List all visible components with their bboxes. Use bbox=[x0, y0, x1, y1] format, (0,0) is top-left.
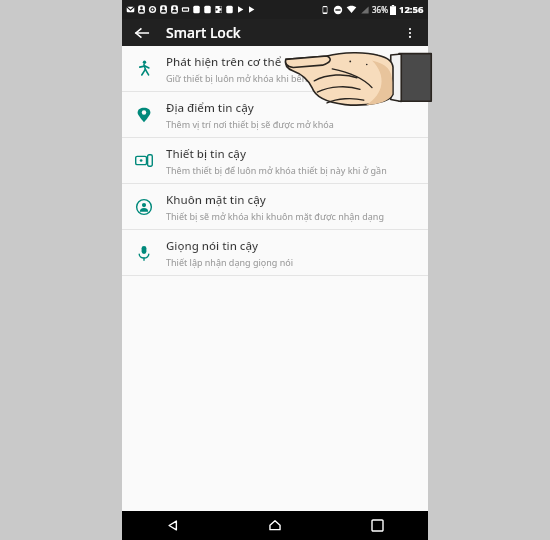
staticText: Thiết bị tin cậy bbox=[166, 146, 247, 162]
button[interactable]: Back bbox=[122, 511, 224, 540]
staticText: Địa điểm tin cậy bbox=[166, 100, 254, 116]
staticText: Smart Lock bbox=[166, 23, 241, 42]
staticText: Giữ thiết bị luôn mở khóa khi bên bạn bbox=[166, 72, 326, 84]
button[interactable]: Home bbox=[224, 511, 326, 540]
button[interactable]: Back bbox=[129, 20, 155, 46]
button[interactable]: Khuôn mặt tin cậy bbox=[122, 184, 428, 229]
staticText: Thiết bị sẽ mở khóa khi khuôn mặt được n… bbox=[166, 210, 384, 222]
staticText: Thêm vị trí nơi thiết bị sẽ được mở khóa bbox=[166, 118, 334, 130]
button[interactable]: Thiết bị tin cậy bbox=[122, 138, 428, 183]
button[interactable]: Phát hiện trên cơ thể bbox=[122, 46, 428, 91]
button[interactable]: Recent apps bbox=[326, 511, 428, 540]
button[interactable]: More options bbox=[398, 21, 422, 45]
staticText: 12:56 bbox=[399, 3, 424, 16]
staticText: Thêm thiết bị để luôn mở khóa thiết bị n… bbox=[166, 164, 387, 176]
staticText: 36% bbox=[372, 4, 388, 15]
button[interactable]: Địa điểm tin cậy bbox=[122, 92, 428, 137]
staticText: Phát hiện trên cơ thể bbox=[166, 54, 282, 70]
button[interactable]: Giọng nói tin cậy bbox=[122, 230, 428, 275]
staticText: Thiết lập nhận dạng giọng nói bbox=[166, 256, 293, 268]
staticText: Khuôn mặt tin cậy bbox=[166, 192, 266, 208]
staticText: Giọng nói tin cậy bbox=[166, 238, 259, 254]
